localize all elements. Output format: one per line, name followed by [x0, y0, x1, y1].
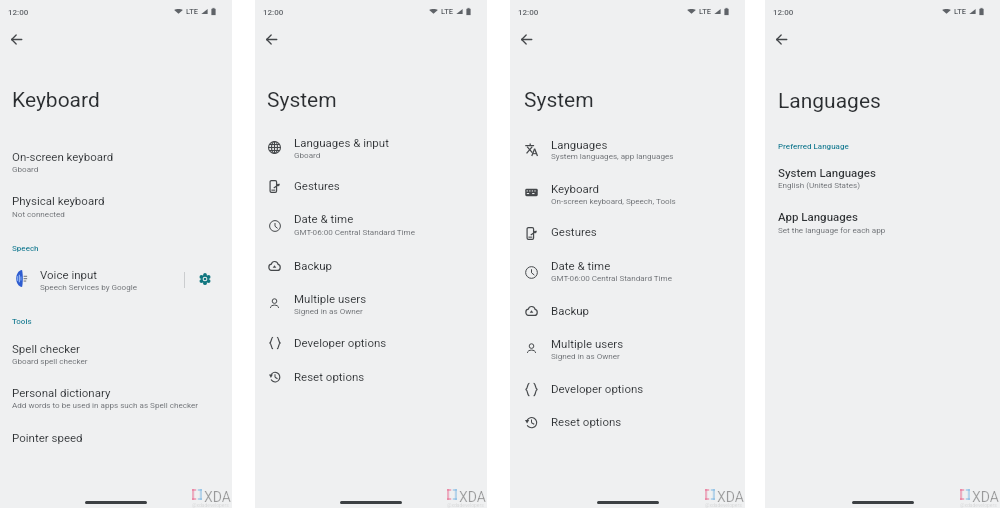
button[interactable] — [255, 331, 487, 355]
staticText: Date & time — [551, 259, 611, 272]
button[interactable] — [255, 174, 487, 198]
staticText: GMT-06:00 Central Standard Time — [294, 227, 415, 236]
button[interactable] — [255, 287, 487, 317]
button[interactable] — [510, 410, 745, 434]
button[interactable]: Back — [259, 27, 283, 51]
button[interactable]: Back — [769, 27, 793, 51]
button[interactable] — [765, 163, 1000, 193]
staticText: LTE — [441, 7, 453, 16]
staticText: @xdadevelopers — [447, 502, 484, 508]
staticText: Languages — [551, 138, 608, 151]
staticText: Preferred Language — [778, 142, 849, 151]
staticText: Date & time — [294, 212, 354, 225]
staticText: Physical keyboard — [12, 194, 105, 207]
button[interactable] — [255, 365, 487, 389]
staticText: Reset options — [551, 415, 622, 428]
staticText: On-screen keyboard, Speech, Tools — [551, 196, 676, 205]
staticText: Pointer speed — [12, 431, 83, 444]
staticText: Gboard — [294, 150, 321, 159]
staticText: Voice input — [40, 268, 98, 281]
staticText: Backup — [294, 259, 333, 272]
button[interactable] — [510, 377, 745, 401]
button[interactable] — [0, 338, 232, 369]
staticText: Set the language for each app — [778, 225, 886, 234]
button[interactable] — [255, 207, 487, 237]
button[interactable] — [255, 131, 487, 161]
button[interactable]: Voice input settings — [190, 266, 232, 292]
staticText: LTE — [954, 7, 966, 16]
staticText: XDA — [972, 489, 999, 505]
staticText: Personal dictionary — [12, 386, 111, 399]
button[interactable] — [0, 266, 190, 292]
staticText: Signed in as Owner — [294, 306, 363, 315]
staticText: Spell checker — [12, 342, 81, 355]
button[interactable] — [0, 190, 232, 221]
button[interactable] — [0, 428, 232, 452]
staticText: Gboard — [12, 164, 39, 173]
button[interactable] — [510, 220, 745, 244]
staticText: Gboard spell checker — [12, 356, 88, 365]
staticText: @xdadevelopers — [192, 502, 229, 508]
staticText: @xdadevelopers — [960, 502, 997, 508]
staticText: Gestures — [294, 179, 340, 192]
staticText: Multiple users — [294, 292, 367, 305]
staticText: Speech Services by Google — [40, 282, 138, 291]
button[interactable]: Back — [514, 27, 538, 51]
button[interactable] — [765, 207, 1000, 237]
staticText: Keyboard — [551, 182, 600, 195]
staticText: Signed in as Owner — [551, 351, 620, 360]
staticText: Tools — [12, 317, 32, 326]
staticText: Not connected — [12, 209, 65, 218]
staticText: 12:00 — [518, 8, 539, 17]
staticText: Gestures — [551, 225, 597, 238]
button[interactable] — [0, 145, 232, 176]
staticText: Add words to be used in apps such as Spe… — [12, 400, 198, 409]
staticText: Backup — [551, 304, 590, 317]
staticText: Languages & input — [294, 136, 389, 149]
button[interactable] — [255, 254, 487, 278]
staticText: LTE — [699, 7, 711, 16]
staticText: LTE — [186, 7, 198, 16]
staticText: 12:00 — [263, 8, 284, 17]
staticText: Reset options — [294, 370, 365, 383]
staticText: 12:00 — [773, 8, 794, 17]
staticText: System languages, app languages — [551, 151, 674, 160]
staticText: XDA — [204, 489, 231, 505]
staticText: Multiple users — [551, 337, 624, 350]
staticText: System — [524, 88, 594, 113]
staticText: Keyboard — [12, 88, 100, 113]
staticText: @xdadevelopers — [705, 502, 742, 508]
button[interactable] — [510, 299, 745, 323]
staticText: Languages — [778, 89, 881, 114]
staticText: Developer options — [294, 336, 387, 349]
staticText: System Languages — [778, 166, 876, 179]
button[interactable]: Back — [4, 27, 28, 51]
button[interactable] — [510, 332, 745, 362]
staticText: GMT-06:00 Central Standard Time — [551, 273, 672, 282]
button[interactable] — [0, 382, 232, 413]
staticText: 12:00 — [8, 8, 29, 17]
button[interactable] — [510, 177, 745, 207]
staticText: XDA — [459, 489, 486, 505]
staticText: App Languages — [778, 210, 858, 223]
staticText: On-screen keyboard — [12, 150, 114, 163]
staticText: Developer options — [551, 382, 644, 395]
staticText: System — [267, 88, 337, 113]
button[interactable] — [510, 254, 745, 284]
staticText: XDA — [717, 489, 744, 505]
button[interactable] — [510, 133, 745, 163]
staticText: English (United States) — [778, 180, 860, 189]
staticText: Speech — [12, 244, 39, 253]
